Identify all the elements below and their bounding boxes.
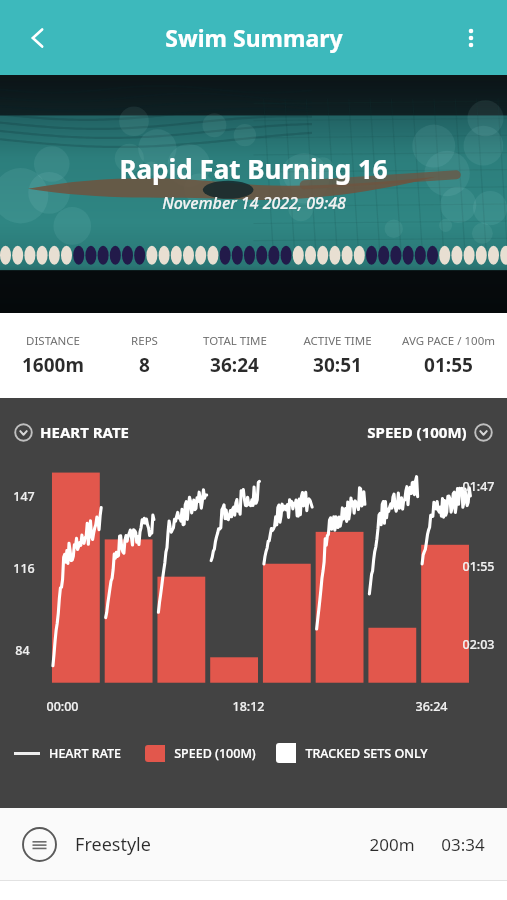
staticText: Rapid Fat Burning 16 — [119, 151, 388, 186]
staticText: 01:55 — [462, 558, 495, 575]
staticText: SPEED (100M) — [367, 422, 467, 442]
staticText: REPS — [131, 333, 158, 349]
staticText: 84 — [15, 642, 30, 659]
staticText: ACTIVE TIME — [303, 333, 372, 349]
staticText: TOTAL TIME — [203, 333, 267, 349]
button[interactable]: More options — [445, 12, 497, 64]
staticText: AVG PACE / 100m — [402, 333, 495, 349]
staticText: 36:24 — [210, 352, 259, 378]
staticText: 01:47 — [462, 478, 495, 495]
button[interactable]: SPEED (100M) — [365, 420, 495, 444]
staticText: 1600m — [22, 352, 84, 378]
button[interactable]: Freestyle — [0, 808, 507, 880]
staticText: 02:03 — [462, 636, 495, 653]
button[interactable]: Back — [12, 12, 64, 64]
staticText: 116 — [13, 560, 35, 577]
staticText: 36:24 — [415, 698, 448, 715]
staticText: 30:51 — [313, 352, 362, 378]
staticText: Swim Summary — [165, 22, 343, 53]
staticText: 8 — [139, 352, 150, 378]
staticText: HEART RATE — [49, 745, 121, 762]
staticText: November 14 2022, 09:48 — [162, 192, 346, 214]
staticText: 18:12 — [232, 698, 265, 715]
staticText: 200m — [369, 833, 415, 856]
staticText: 00:00 — [46, 698, 79, 715]
staticText: HEART RATE — [40, 422, 129, 442]
button[interactable]: SPEED (100M) — [145, 745, 256, 762]
staticText: 03:34 — [441, 833, 485, 856]
button[interactable]: TRACKED SETS ONLY — [276, 743, 428, 763]
button[interactable]: HEART RATE — [14, 745, 121, 762]
staticText: 147 — [13, 488, 35, 505]
staticText: Freestyle — [75, 832, 151, 857]
staticText: TRACKED SETS ONLY — [305, 745, 428, 762]
button[interactable]: HEART RATE — [12, 420, 131, 444]
staticText: SPEED (100M) — [174, 745, 256, 762]
staticText: 01:55 — [424, 352, 473, 378]
staticText: DISTANCE — [26, 333, 80, 349]
